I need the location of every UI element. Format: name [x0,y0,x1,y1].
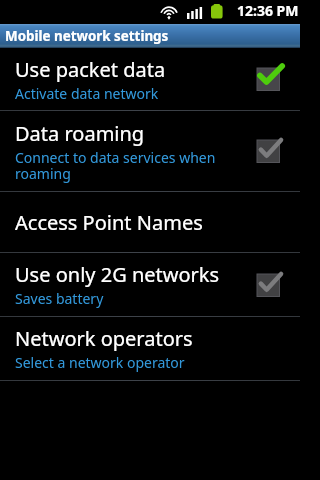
button[interactable]: Data roaming [0,111,300,191]
staticText: Mobile network settings [5,27,169,45]
button[interactable]: Use only 2G networks [0,253,300,316]
staticText: Activate data network [15,84,159,103]
other: Checked [257,68,287,90]
other: Battery [211,4,223,20]
other: Not checked [257,140,287,162]
staticText: Connect to data services when roaming [15,148,243,183]
button[interactable]: Mobile network settings [0,24,300,48]
staticText: Network operators [15,325,193,352]
staticText: Select a network operator [15,353,185,372]
staticText: Saves battery [15,289,104,308]
other: Signal strength [187,7,201,19]
other: Not checked [257,274,287,296]
button[interactable]: Network operators [0,317,300,380]
staticText: 12:36 PM [237,1,299,20]
button[interactable]: Use packet data [0,48,300,110]
button[interactable]: Access Point Names [0,192,300,252]
other: Wi-Fi [159,3,179,19]
staticText: Use packet data [15,56,166,83]
staticText: Use only 2G networks [15,261,220,288]
staticText: Data roaming [15,120,145,147]
staticText: Access Point Names [15,209,203,236]
